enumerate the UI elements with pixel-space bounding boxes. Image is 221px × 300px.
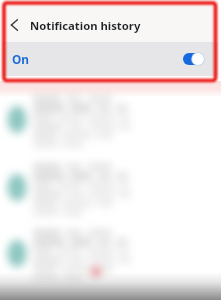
button[interactable]: Back <box>0 10 30 40</box>
button[interactable]: Toggle notification history <box>183 50 207 68</box>
staticText: On <box>12 51 29 67</box>
button[interactable]: On <box>0 42 221 76</box>
staticText: Notification history <box>30 18 141 33</box>
